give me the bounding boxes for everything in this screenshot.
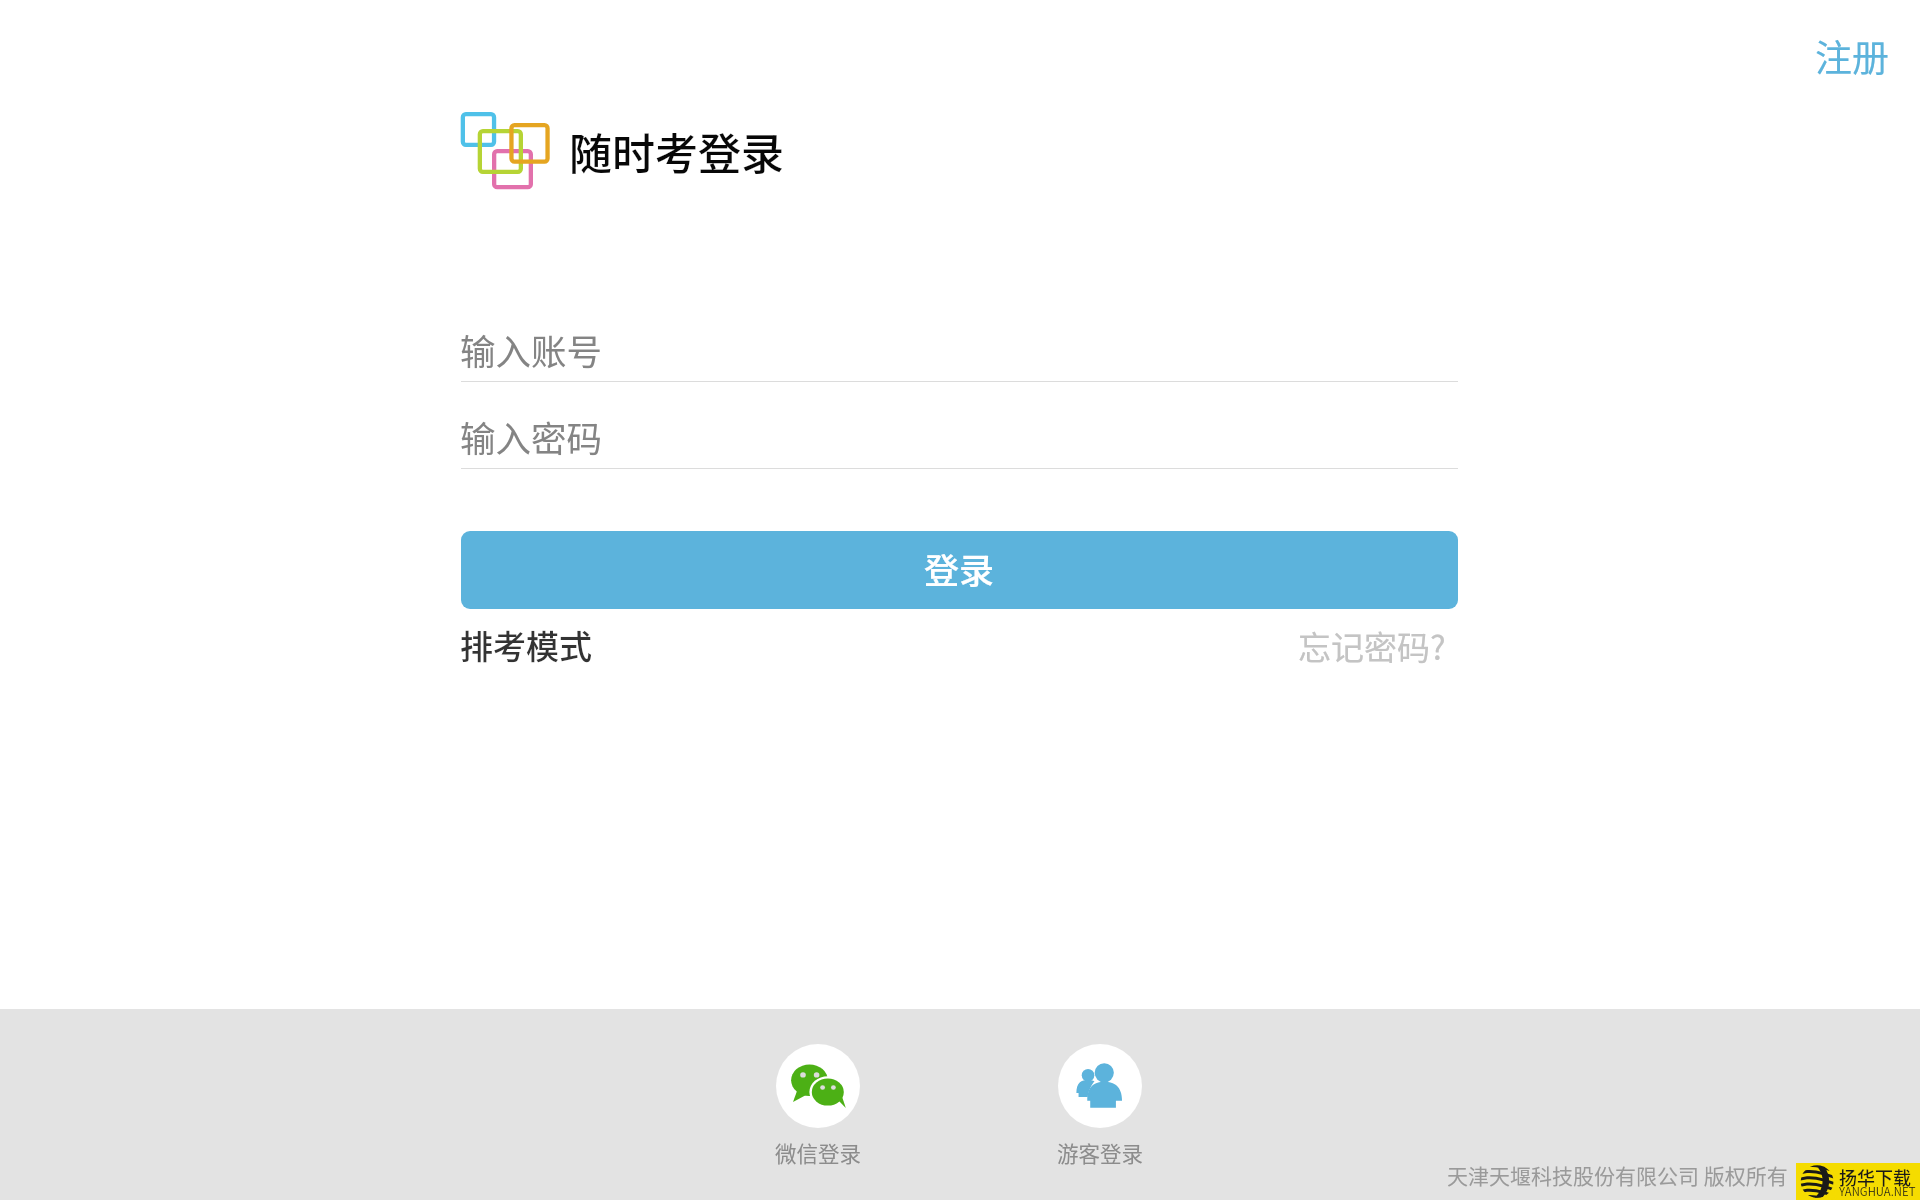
button[interactable]: Guest login (1040, 1034, 1160, 1174)
staticText: 忘记密码? (1298, 622, 1446, 664)
button[interactable]: 忘记密码? (1298, 622, 1446, 664)
staticText: 天津天堰科技股份有限公司 版权所有 (1447, 1160, 1788, 1190)
button[interactable]: 注册 (1802, 22, 1902, 90)
button[interactable]: 输入密码 (460, 411, 1458, 461)
staticText: 游客登录 (1057, 1137, 1144, 1168)
button[interactable]: 登录 (461, 531, 1458, 609)
staticText: 登录 (924, 543, 995, 594)
staticText: YANGHUA.NET (1839, 1183, 1916, 1199)
staticText: 微信登录 (775, 1137, 862, 1168)
staticText: 随时考登录 (569, 120, 784, 182)
staticText: 输入账号 (460, 324, 603, 374)
button[interactable]: 输入账号 (460, 324, 1458, 374)
button[interactable]: 排考模式 (460, 621, 592, 663)
staticText: 注册 (1815, 29, 1889, 83)
button[interactable]: WeChat login (758, 1034, 878, 1174)
staticText: 扬华下载 (1839, 1164, 1911, 1190)
staticText: 输入密码 (460, 411, 603, 461)
staticText: 排考模式 (460, 621, 592, 663)
